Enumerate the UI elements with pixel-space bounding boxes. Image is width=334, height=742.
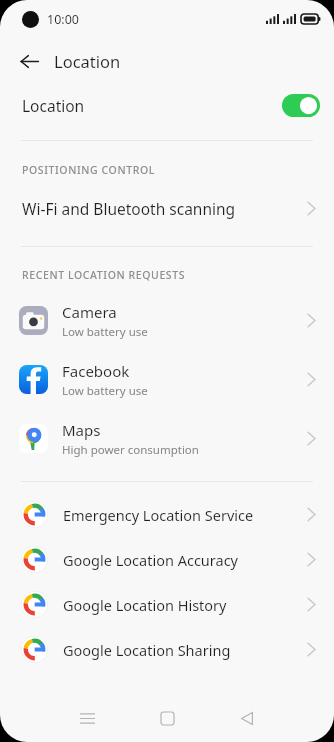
staticText: Emergency Location Service: [63, 505, 307, 525]
staticText: Location: [54, 50, 121, 72]
staticText: Camera: [62, 302, 117, 322]
button[interactable]: Recent apps: [72, 703, 102, 733]
staticText: 10:00: [47, 11, 79, 28]
button[interactable]: Camera: [0, 291, 334, 350]
staticText: Low battery use: [62, 324, 148, 340]
button[interactable]: Location: [0, 82, 334, 128]
button[interactable]: Back: [232, 703, 262, 733]
staticText: POSITIONING CONTROL: [22, 163, 155, 177]
button[interactable]: Google Location Accuracy: [0, 537, 334, 582]
button[interactable]: Home: [152, 703, 182, 733]
staticText: Maps: [62, 420, 101, 440]
button[interactable]: Google Location History: [0, 582, 334, 627]
staticText: High power consumption: [62, 442, 199, 458]
staticText: Low battery use: [62, 383, 148, 399]
staticText: RECENT LOCATION REQUESTS: [22, 268, 186, 282]
staticText: Google Location Sharing: [63, 640, 307, 660]
button[interactable]: Wi-Fi and Bluetooth scanning: [0, 186, 334, 230]
staticText: Wi-Fi and Bluetooth scanning: [22, 198, 307, 219]
button[interactable]: Google Location Sharing: [0, 627, 334, 672]
button[interactable]: Back: [12, 44, 46, 78]
button[interactable]: Emergency Location Service: [0, 492, 334, 537]
button[interactable]: Facebook: [0, 350, 334, 409]
staticText: Google Location Accuracy: [63, 550, 307, 570]
staticText: Facebook: [62, 361, 130, 381]
button[interactable]: Maps: [0, 409, 334, 468]
staticText: Location: [22, 95, 282, 116]
staticText: Google Location History: [63, 595, 307, 615]
